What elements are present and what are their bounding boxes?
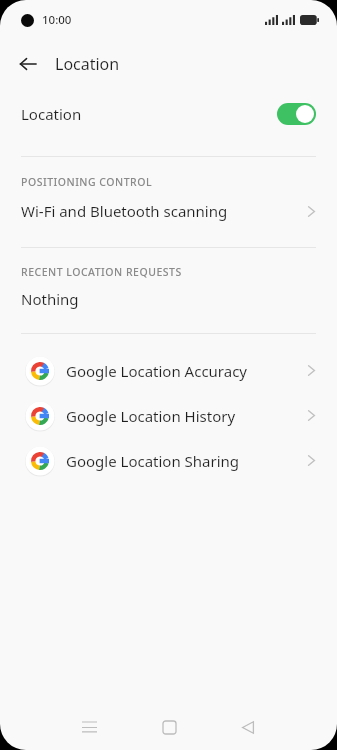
button[interactable]: Wi-Fi and Bluetooth scanning (0, 189, 337, 233)
button[interactable]: Location (0, 88, 337, 140)
staticText: 10:00 (42, 12, 72, 28)
button[interactable]: Back (11, 47, 45, 81)
staticText: Location (21, 104, 82, 124)
button[interactable]: Location toggle (277, 103, 316, 125)
button[interactable]: Home (152, 710, 186, 744)
button[interactable]: Google Location History (0, 393, 337, 438)
button[interactable]: Recent apps (72, 710, 106, 744)
button[interactable]: Back (231, 710, 265, 744)
staticText: Google Location Accuracy (66, 361, 248, 381)
staticText: POSITIONING CONTROL (21, 175, 153, 189)
staticText: Nothing (21, 289, 79, 309)
staticText: Google Location History (66, 406, 236, 426)
staticText: Location (55, 53, 120, 75)
staticText: RECENT LOCATION REQUESTS (21, 265, 182, 279)
button[interactable]: Google Location Sharing (0, 438, 337, 483)
staticText: Wi-Fi and Bluetooth scanning (21, 201, 228, 221)
button[interactable]: Google Location Accuracy (0, 348, 337, 393)
staticText: Google Location Sharing (66, 451, 240, 471)
